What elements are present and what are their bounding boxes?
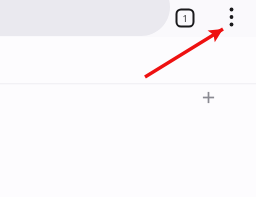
button[interactable]: Add <box>199 88 218 107</box>
button[interactable]: More options <box>221 4 242 32</box>
staticText: 1 <box>182 12 188 24</box>
button[interactable]: Tabs, 1 open <box>174 7 196 29</box>
